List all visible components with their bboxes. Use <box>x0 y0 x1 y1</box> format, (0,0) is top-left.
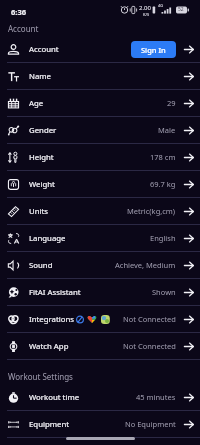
button[interactable]: Language <box>0 225 200 251</box>
staticText: 4G <box>158 3 164 8</box>
staticText: Workout Settings <box>8 371 73 382</box>
staticText: 6:36 <box>11 7 26 17</box>
button[interactable]: Integrations <box>0 306 200 332</box>
staticText: 69.7 kg <box>150 179 176 189</box>
button[interactable]: Gender <box>0 117 200 143</box>
staticText: Metric(kg,cm) <box>127 206 176 216</box>
staticText: Sound <box>29 260 53 271</box>
staticText: Name <box>29 71 51 82</box>
button[interactable]: Workout time <box>0 384 200 410</box>
staticText: K/S <box>143 12 150 17</box>
staticText: Weight <box>29 179 55 190</box>
staticText: Account <box>8 23 39 34</box>
button[interactable]: Units <box>0 198 200 224</box>
staticText: Age <box>29 98 44 109</box>
staticText: Shown <box>152 287 176 297</box>
staticText: English <box>150 233 176 243</box>
staticText: Not Connected <box>123 341 176 351</box>
staticText: Integrations <box>29 314 75 325</box>
button[interactable]: Name <box>0 63 200 89</box>
staticText: Equipment <box>29 419 70 430</box>
staticText: Gender <box>29 125 57 136</box>
staticText: 52 <box>178 6 184 13</box>
staticText: Watch App <box>29 341 69 352</box>
staticText: Height <box>29 152 54 163</box>
staticText: 29 <box>167 98 176 108</box>
button[interactable]: Account <box>0 36 200 62</box>
staticText: Language <box>29 233 66 244</box>
staticText: 45 minutes <box>136 392 176 402</box>
button[interactable]: Sound <box>0 252 200 278</box>
button[interactable]: FitAI Assistant <box>0 279 200 305</box>
staticText: Account <box>29 44 59 55</box>
button[interactable]: Weight <box>0 171 200 197</box>
staticText: 2.00 <box>139 4 151 12</box>
staticText: FitAI Assistant <box>29 287 81 298</box>
staticText: Achieve, Medium <box>115 260 176 270</box>
button[interactable]: Height <box>0 144 200 170</box>
button[interactable]: Watch App <box>0 333 200 359</box>
button[interactable]: Equipment <box>0 411 200 437</box>
staticText: Sign In <box>141 45 166 55</box>
staticText: No Equipment <box>125 419 176 429</box>
staticText: 178 cm <box>150 152 176 162</box>
button[interactable]: Age <box>0 90 200 116</box>
staticText: Units <box>29 206 49 217</box>
staticText: Workout time <box>29 392 80 403</box>
button[interactable]: Sign In <box>131 41 176 58</box>
staticText: Not Connected <box>123 314 176 324</box>
staticText: Male <box>158 125 176 135</box>
